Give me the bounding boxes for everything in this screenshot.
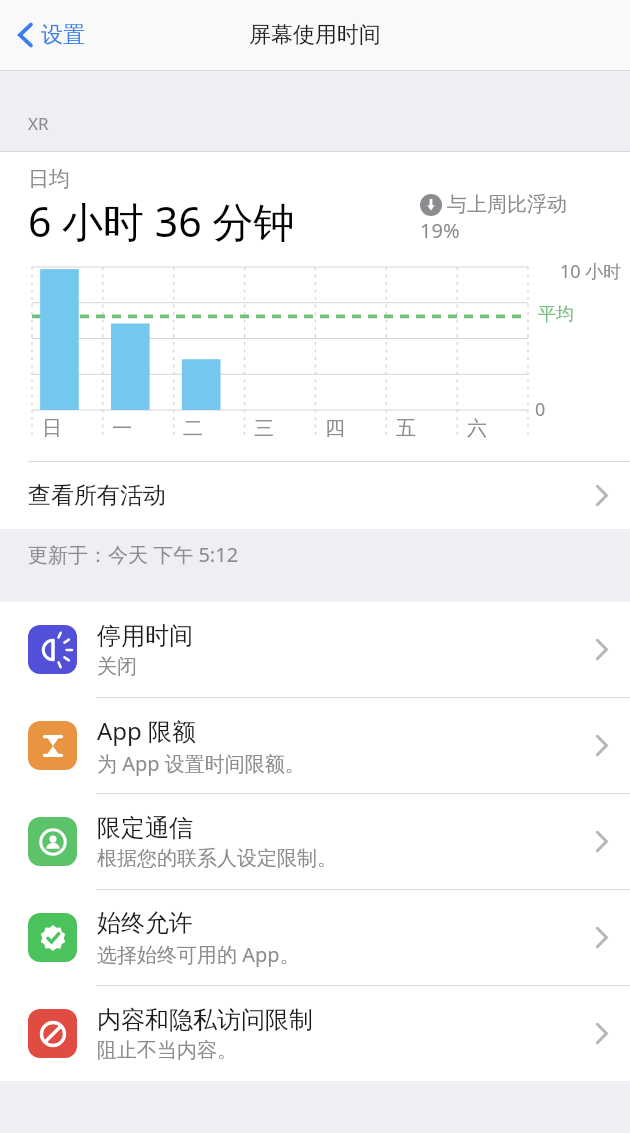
staticText: 0 bbox=[535, 397, 546, 422]
button[interactable]: 始终允许 bbox=[0, 890, 630, 985]
staticText: 四 bbox=[325, 416, 345, 441]
staticText: 限定通信 bbox=[97, 813, 193, 843]
staticText: 二 bbox=[183, 416, 203, 441]
staticText: 设置 bbox=[41, 21, 85, 49]
staticText: 五 bbox=[396, 416, 416, 441]
button[interactable]: 查看所有活动 bbox=[0, 462, 630, 529]
staticText: 日 bbox=[42, 416, 62, 441]
button[interactable]: 限定通信 bbox=[0, 794, 630, 889]
button[interactable]: 设置 bbox=[12, 13, 91, 57]
staticText: 内容和隐私访问限制 bbox=[97, 1005, 313, 1035]
button[interactable]: 停用时间 bbox=[0, 602, 630, 697]
staticText: 日均 bbox=[28, 166, 70, 192]
staticText: 阻止不当内容。 bbox=[97, 1038, 237, 1063]
staticText: 19% bbox=[420, 217, 460, 244]
other: App 限额 bbox=[28, 721, 77, 770]
other: 限定通信 bbox=[28, 817, 77, 866]
staticText: 一 bbox=[112, 416, 132, 441]
staticText: App 限额 bbox=[97, 714, 197, 747]
other: 始终允许 bbox=[28, 913, 77, 962]
staticText: 三 bbox=[254, 416, 274, 441]
button[interactable]: App 限额 bbox=[0, 698, 630, 793]
other: 停用时间 bbox=[28, 625, 77, 674]
staticText: 六 bbox=[467, 416, 487, 441]
staticText: 平均 bbox=[538, 303, 574, 326]
staticText: 根据您的联系人设定限制。 bbox=[97, 846, 337, 871]
other: 内容和隐私访问限制 bbox=[28, 1009, 77, 1058]
staticText: 停用时间 bbox=[97, 621, 193, 651]
staticText: 始终允许 bbox=[97, 908, 193, 938]
staticText: 屏幕使用时间 bbox=[249, 21, 381, 49]
button[interactable]: 内容和隐私访问限制 bbox=[0, 986, 630, 1081]
staticText: 查看所有活动 bbox=[28, 481, 595, 510]
staticText: 选择始终可用的 App。 bbox=[97, 941, 300, 968]
staticText: 为 App 设置时间限额。 bbox=[97, 750, 305, 777]
staticText: 与上周比浮动 bbox=[447, 192, 567, 217]
staticText: 6 小时 36 分钟 bbox=[28, 193, 295, 249]
staticText: XR bbox=[28, 112, 49, 135]
staticText: 关闭 bbox=[97, 654, 137, 679]
staticText: 更新于：今天 下午 5:12 bbox=[28, 541, 239, 568]
staticText: 10 小时 bbox=[560, 259, 622, 284]
